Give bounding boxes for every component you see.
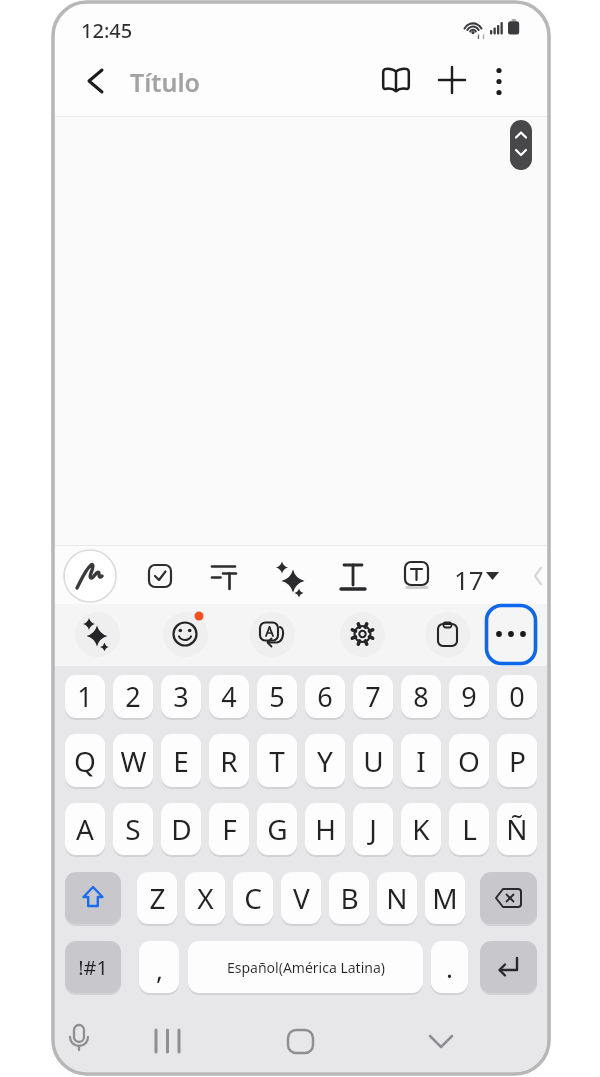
staticText: F — [222, 810, 237, 848]
button[interactable] — [250, 612, 295, 657]
button[interactable]: 0 — [497, 675, 537, 718]
button[interactable]: X — [185, 872, 225, 924]
staticText: 8 — [413, 678, 429, 715]
staticText: L — [462, 810, 477, 848]
staticText: 9 — [461, 678, 477, 715]
button[interactable]: 5 — [257, 675, 297, 718]
staticText: 17 — [454, 562, 484, 597]
staticText: T — [269, 742, 285, 780]
button[interactable] — [163, 612, 208, 657]
staticText: A — [76, 810, 94, 848]
button[interactable]: 3 — [161, 675, 201, 718]
button[interactable]: 4 — [209, 675, 249, 718]
button[interactable]: 1 — [65, 675, 105, 718]
button[interactable] — [336, 559, 370, 593]
button[interactable]: G — [257, 803, 297, 855]
button[interactable]: D — [161, 803, 201, 855]
staticText: X — [197, 879, 214, 917]
staticText: 7 — [365, 678, 381, 715]
staticText: G — [267, 810, 288, 848]
button[interactable] — [75, 64, 111, 100]
staticText: 1 — [77, 678, 93, 715]
button[interactable] — [425, 612, 470, 657]
staticText: M — [432, 879, 458, 917]
button[interactable]: K — [401, 803, 441, 855]
staticText: Español(América Latina) — [227, 958, 385, 977]
button[interactable]: Q — [65, 734, 105, 787]
button[interactable] — [510, 120, 532, 170]
button[interactable]: Ñ — [497, 803, 537, 855]
button[interactable]: P — [497, 734, 537, 787]
button[interactable]: 9 — [449, 675, 489, 718]
button[interactable]: T — [257, 734, 297, 787]
button[interactable] — [485, 604, 537, 665]
button[interactable]: W — [113, 734, 153, 787]
button[interactable] — [340, 612, 385, 657]
staticText: B — [340, 879, 359, 917]
staticText: O — [458, 742, 480, 780]
button[interactable]: 6 — [305, 675, 345, 718]
staticText: . — [446, 950, 453, 985]
button[interactable]: 8 — [401, 675, 441, 718]
button[interactable]: Y — [305, 734, 345, 787]
button[interactable] — [480, 872, 537, 924]
button[interactable] — [434, 62, 472, 100]
staticText: R — [220, 742, 238, 780]
button[interactable]: B — [329, 872, 369, 924]
button[interactable] — [75, 612, 120, 657]
staticText: P — [509, 742, 526, 780]
button[interactable]: C — [233, 872, 273, 924]
button[interactable]: 7 — [353, 675, 393, 718]
button[interactable] — [65, 872, 121, 924]
staticText: Título — [130, 65, 200, 99]
staticText: Q — [74, 742, 96, 780]
button[interactable]: H — [305, 803, 345, 855]
button[interactable]: J — [353, 803, 393, 855]
button[interactable]: O — [449, 734, 489, 787]
staticText: , — [156, 952, 163, 987]
button[interactable]: M — [425, 872, 465, 924]
staticText: C — [244, 879, 262, 917]
button[interactable]: Z — [137, 872, 177, 924]
button[interactable]: R — [209, 734, 249, 787]
button[interactable]: F — [209, 803, 249, 855]
staticText: K — [412, 810, 430, 848]
button[interactable]: L — [449, 803, 489, 855]
button[interactable]: , — [139, 941, 179, 993]
button[interactable]: S — [113, 803, 153, 855]
button[interactable] — [451, 559, 501, 593]
button[interactable]: !#1 — [65, 941, 121, 993]
staticText: 12:45 — [81, 17, 133, 44]
staticText: 6 — [317, 678, 333, 715]
staticText: J — [369, 810, 377, 848]
button[interactable] — [64, 550, 116, 602]
button[interactable]: N — [377, 872, 417, 924]
button[interactable] — [480, 941, 537, 993]
button[interactable]: Español(América Latina) — [188, 941, 423, 993]
button[interactable] — [399, 559, 433, 593]
button[interactable]: U — [353, 734, 393, 787]
button[interactable] — [483, 62, 517, 100]
staticText: V — [293, 879, 310, 917]
button[interactable] — [420, 1022, 464, 1066]
button[interactable] — [206, 559, 240, 593]
staticText: E — [173, 742, 189, 780]
button[interactable]: E — [161, 734, 201, 787]
button[interactable]: V — [281, 872, 321, 924]
button[interactable] — [61, 1022, 101, 1066]
staticText: Y — [317, 742, 333, 780]
staticText: 5 — [269, 678, 285, 715]
staticText: S — [125, 810, 141, 848]
button[interactable]: 2 — [113, 675, 153, 718]
button[interactable] — [143, 559, 177, 593]
staticText: U — [363, 742, 384, 780]
button[interactable] — [280, 1022, 324, 1066]
button[interactable]: . — [431, 941, 468, 993]
staticText: !#1 — [78, 954, 108, 981]
button[interactable] — [275, 559, 309, 593]
button[interactable] — [147, 1022, 187, 1066]
button[interactable] — [378, 62, 416, 100]
staticText: Ñ — [506, 810, 528, 848]
button[interactable]: I — [401, 734, 441, 787]
button[interactable]: A — [65, 803, 105, 855]
